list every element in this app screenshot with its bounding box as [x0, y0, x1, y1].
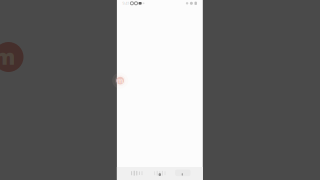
staticText: m	[0, 42, 15, 71]
button[interactable]: Back	[174, 167, 192, 178]
button[interactable]: Home	[152, 168, 168, 179]
staticText: m	[117, 76, 124, 85]
staticText: 9:41	[122, 1, 129, 6]
button[interactable]: Recent apps	[130, 168, 144, 179]
